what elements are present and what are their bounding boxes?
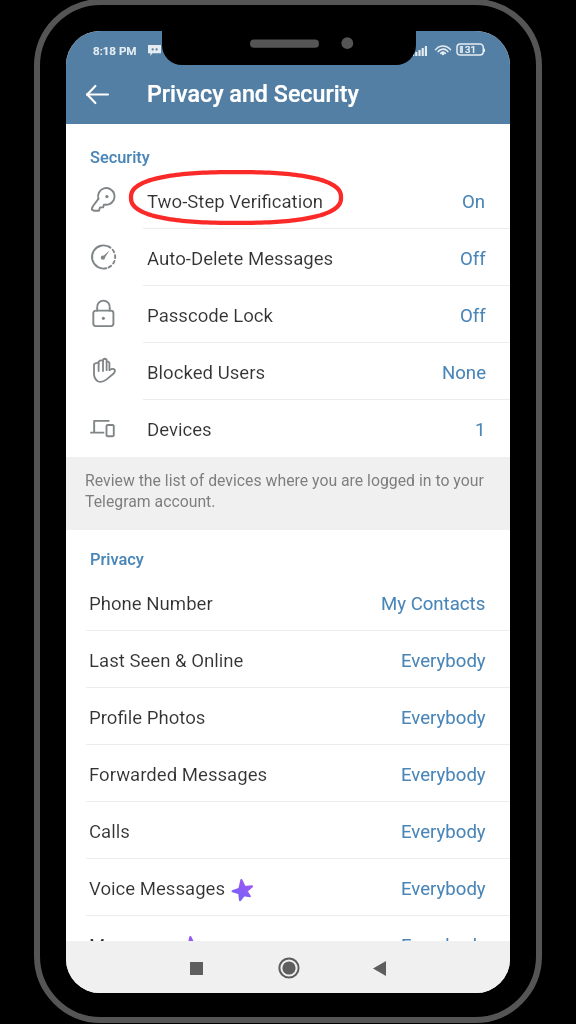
button[interactable]: Devices (66, 400, 510, 457)
staticText: Messages (89, 935, 175, 957)
staticText: Profile Photos (89, 707, 206, 729)
staticText: Voice Messages (89, 878, 226, 900)
staticText: 31 (465, 44, 476, 55)
staticText: Off (460, 305, 486, 327)
button[interactable]: Back (75, 72, 119, 116)
staticText: Devices (147, 419, 212, 441)
staticText: Everybody (401, 707, 486, 729)
staticText: None (442, 362, 486, 384)
staticText: Forwarded Messages (89, 764, 268, 786)
staticText: Privacy (90, 550, 144, 569)
button[interactable]: Phone Number (66, 574, 510, 631)
button[interactable]: Back (359, 948, 399, 988)
button[interactable]: Profile Photos (66, 688, 510, 745)
staticText: Everybody (401, 650, 486, 672)
staticText: On (462, 191, 486, 213)
button[interactable]: Recent apps (176, 948, 216, 988)
staticText: Security (90, 148, 150, 167)
button[interactable]: Messages (66, 916, 510, 973)
button[interactable]: Home (267, 946, 311, 990)
staticText: 1 (475, 419, 486, 441)
staticText: Auto-Delete Messages (147, 248, 334, 270)
staticText: Everybody (401, 878, 486, 900)
button[interactable]: Last Seen & Online (66, 631, 510, 688)
button[interactable]: Voice Messages (66, 859, 510, 916)
staticText: Phone Number (89, 593, 213, 615)
button[interactable]: Auto-Delete Messages (66, 229, 510, 286)
button[interactable]: Two-Step Verification (66, 172, 510, 229)
staticText: Off (460, 248, 486, 270)
button[interactable]: Passcode Lock (66, 286, 510, 343)
staticText: 8:18 PM (93, 44, 137, 58)
staticText: Review the list of devices where you are… (85, 471, 493, 511)
staticText: Everybody (401, 764, 486, 786)
button[interactable]: Forwarded Messages (66, 745, 510, 802)
staticText: Blocked Users (147, 362, 266, 384)
staticText: Last Seen & Online (89, 650, 244, 672)
staticText: Everybody (401, 935, 486, 957)
staticText: Privacy and Security (147, 80, 359, 107)
button[interactable]: Blocked Users (66, 343, 510, 400)
staticText: Passcode Lock (147, 305, 274, 327)
staticText: Two-Step Verification (147, 191, 324, 213)
staticText: Calls (89, 821, 130, 843)
button[interactable]: Calls (66, 802, 510, 859)
staticText: Everybody (401, 821, 486, 843)
staticText: My Contacts (381, 593, 486, 615)
